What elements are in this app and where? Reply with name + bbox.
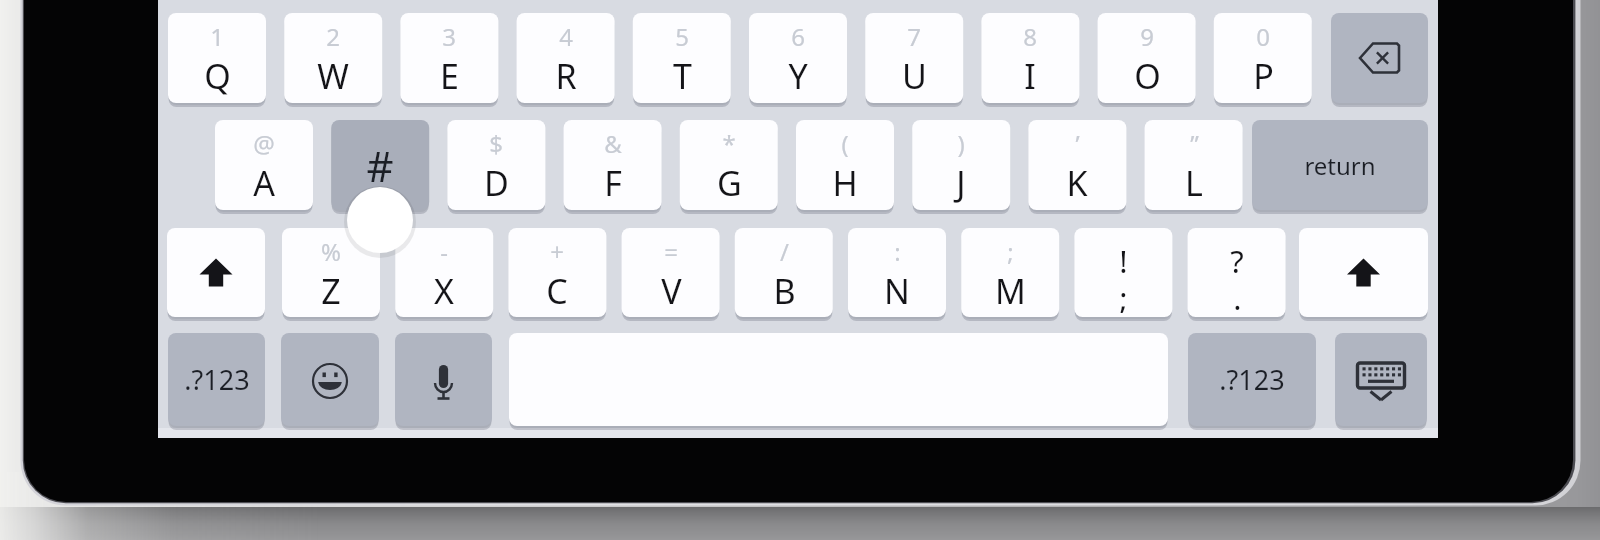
staticText: J <box>956 160 966 206</box>
button[interactable]: .?123 <box>168 333 265 426</box>
button[interactable]: M <box>961 228 1059 317</box>
staticText: O <box>1134 53 1161 99</box>
staticText: B <box>773 268 796 314</box>
staticText: Z <box>321 268 341 314</box>
staticText: D <box>484 160 509 206</box>
staticText: ) <box>957 127 965 157</box>
button[interactable]: E <box>400 13 498 103</box>
button[interactable]: return <box>1252 120 1428 210</box>
staticText: ( <box>841 127 849 157</box>
button[interactable]: Dictation <box>395 333 492 426</box>
staticText: H <box>832 160 858 206</box>
button[interactable]: D <box>447 120 545 210</box>
button[interactable]: V <box>622 228 720 317</box>
staticText: 2 <box>326 20 340 50</box>
staticText: R <box>555 53 577 99</box>
button[interactable]: X <box>395 228 493 317</box>
button[interactable]: L <box>1145 120 1243 210</box>
staticText: . <box>1233 277 1242 313</box>
button[interactable]: K <box>1028 120 1126 210</box>
staticText: N <box>884 268 910 314</box>
staticText: U <box>902 53 927 99</box>
staticText: return <box>1304 149 1376 182</box>
staticText: K <box>1066 160 1088 206</box>
button[interactable]: F <box>564 120 662 210</box>
button[interactable]: H <box>796 120 894 210</box>
staticText: % <box>321 235 341 264</box>
button[interactable]: I <box>981 13 1079 103</box>
staticText: : <box>894 235 901 264</box>
staticText: ; <box>1119 277 1128 313</box>
button[interactable]: # <box>331 120 429 210</box>
button[interactable]: Hide keyboard <box>1335 333 1427 426</box>
staticText: 1 <box>210 20 224 50</box>
button[interactable]: N <box>848 228 946 317</box>
staticText: T <box>673 53 692 99</box>
staticText: ! <box>1119 240 1128 278</box>
staticText: M <box>995 268 1026 314</box>
staticText: # <box>366 137 394 194</box>
button[interactable]: G <box>680 120 778 210</box>
button[interactable]: P <box>1214 13 1312 103</box>
button[interactable]: W <box>284 13 382 103</box>
staticText: 9 <box>1140 20 1154 50</box>
staticText: & <box>604 127 622 157</box>
staticText: .?123 <box>1219 361 1285 398</box>
staticText: W <box>317 53 349 99</box>
button[interactable]: C <box>508 228 606 317</box>
staticText: ’ <box>1075 127 1080 157</box>
staticText: + <box>550 235 564 264</box>
staticText: P <box>1253 53 1274 99</box>
staticText: L <box>1185 160 1203 206</box>
staticText: ; <box>1007 235 1014 264</box>
staticText: C <box>546 268 568 314</box>
staticText: = <box>664 235 678 264</box>
button[interactable]: ; <box>1074 228 1172 317</box>
staticText: X <box>434 268 454 314</box>
button[interactable]: R <box>517 13 615 103</box>
staticText: F <box>604 160 622 206</box>
staticText: 6 <box>791 20 805 50</box>
button[interactable]: U <box>865 13 963 103</box>
button[interactable]: O <box>1098 13 1196 103</box>
button[interactable]: Backspace <box>1331 13 1428 103</box>
button[interactable]: B <box>735 228 833 317</box>
staticText: @ <box>253 127 275 157</box>
staticText: A <box>253 160 275 206</box>
staticText: G <box>717 160 742 206</box>
button[interactable]: Emoji <box>281 333 379 426</box>
staticText: 0 <box>1256 20 1270 50</box>
staticText: ? <box>1230 240 1244 278</box>
staticText: I <box>1024 53 1036 99</box>
staticText: 3 <box>442 20 456 50</box>
staticText: 8 <box>1023 20 1037 50</box>
button[interactable]: A <box>215 120 313 210</box>
staticText: Y <box>788 53 808 99</box>
button[interactable]: Shift <box>167 228 265 317</box>
button[interactable]: Y <box>749 13 847 103</box>
button[interactable]: Q <box>168 13 266 103</box>
staticText: / <box>780 235 789 264</box>
staticText: 5 <box>675 20 689 50</box>
staticText: $ <box>489 127 503 157</box>
staticText: E <box>440 53 459 99</box>
staticText: - <box>440 235 448 264</box>
button[interactable]: Shift <box>1299 228 1428 317</box>
staticText: .?123 <box>184 361 250 398</box>
button[interactable]: .?123 <box>1188 333 1316 426</box>
staticText: 4 <box>559 20 573 50</box>
button[interactable]: . <box>1188 228 1286 317</box>
staticText: V <box>661 268 682 314</box>
button[interactable]: T <box>633 13 731 103</box>
staticText: ” <box>1190 127 1199 157</box>
button[interactable]: J <box>912 120 1010 210</box>
staticText: * <box>722 127 736 157</box>
button[interactable]: Z <box>282 228 380 317</box>
staticText: 7 <box>907 20 921 50</box>
staticText: Q <box>204 53 231 99</box>
